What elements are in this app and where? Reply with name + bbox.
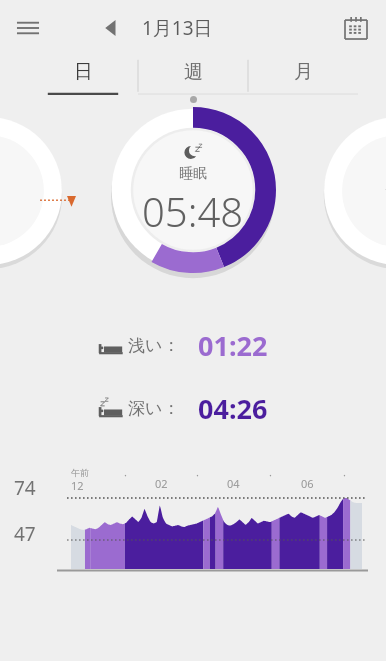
staticText: · — [343, 467, 346, 482]
staticText: 02 — [155, 476, 168, 491]
button[interactable]: 日 — [28, 55, 138, 95]
button[interactable] — [0, 467, 386, 577]
button[interactable]: 睡眠 — [110, 107, 276, 273]
staticText: 05:48 — [142, 184, 244, 238]
button[interactable]: 深い： — [0, 390, 386, 427]
staticText: 深い： — [128, 398, 180, 419]
button[interactable]: 浅い： — [0, 327, 386, 364]
staticText: 47 — [14, 521, 58, 547]
button[interactable]: Previous day — [92, 8, 132, 48]
staticText: 74 — [14, 475, 58, 501]
staticText: 午前 — [71, 467, 89, 478]
staticText: · — [124, 467, 127, 482]
button[interactable]: Menu — [6, 6, 50, 50]
staticText: 月 — [294, 60, 313, 84]
staticText: · — [269, 467, 272, 482]
staticText: 04:26 — [198, 390, 268, 427]
staticText: · — [196, 467, 199, 482]
staticText: 睡眠 — [179, 165, 207, 183]
staticText: 06 — [301, 476, 314, 491]
button[interactable]: Calendar — [334, 6, 378, 50]
staticText: 12 — [71, 478, 84, 493]
button[interactable]: 週 — [138, 55, 248, 95]
button[interactable]: Calories — [0, 115, 64, 267]
staticText: 週 — [184, 60, 203, 84]
button[interactable]: Activity — [322, 115, 386, 267]
staticText: 日 — [74, 60, 93, 84]
staticText: 01:22 — [198, 327, 268, 364]
button[interactable]: 月 — [248, 55, 358, 95]
staticText: 1月13日 — [142, 15, 213, 41]
staticText: 浅い： — [128, 335, 180, 356]
staticText: 04 — [227, 476, 240, 491]
